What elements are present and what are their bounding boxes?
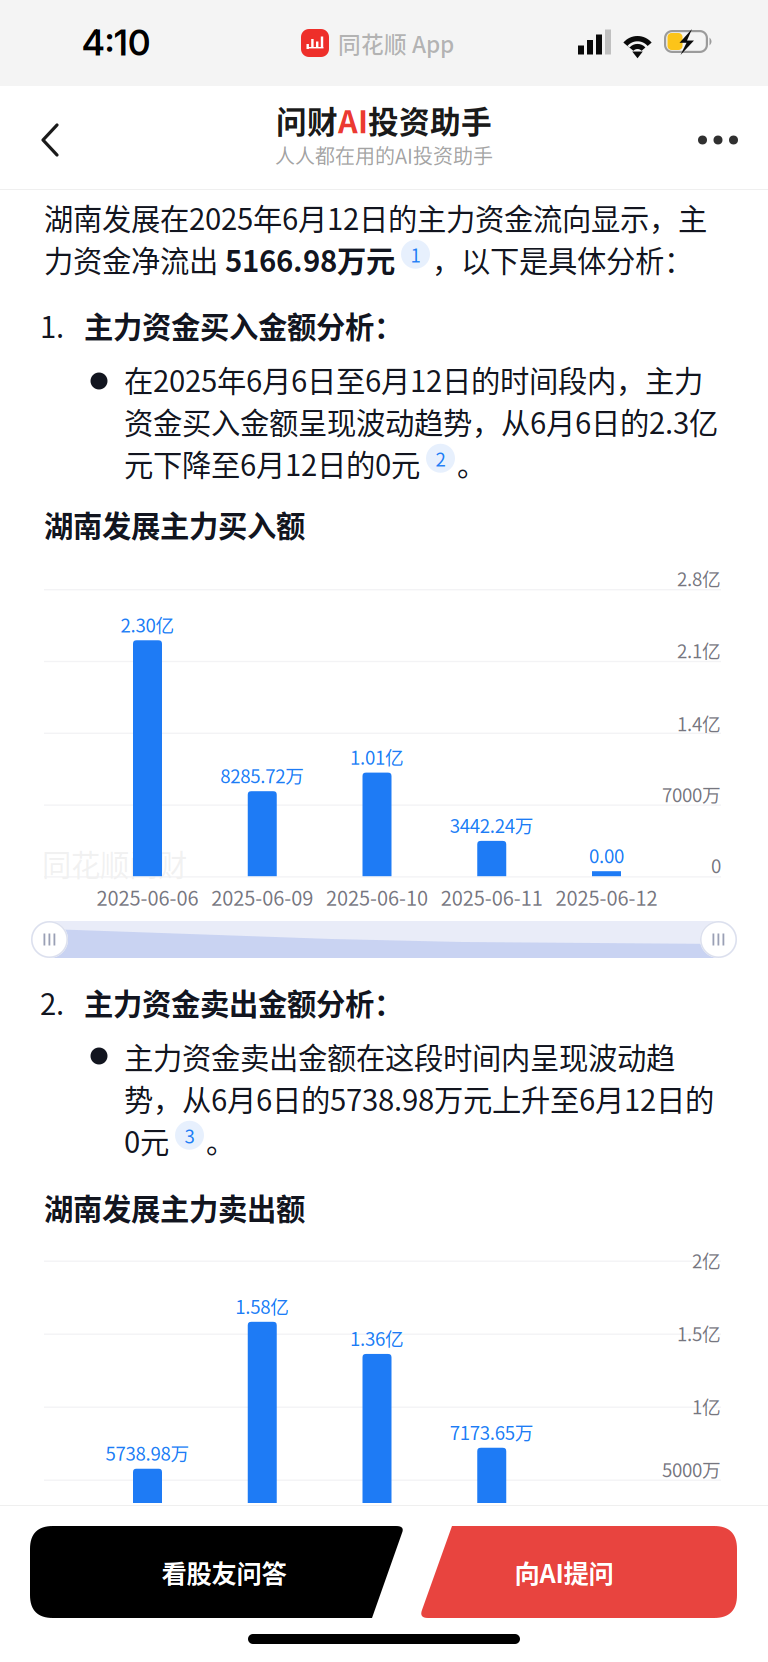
staticText: 资金买入金额呈现波动趋势，从6月6日的2.3亿	[124, 400, 718, 442]
staticText: 1.01亿	[350, 743, 404, 770]
staticText: 0	[711, 851, 721, 878]
staticText: 2.30亿	[120, 611, 174, 638]
staticText: 0.00	[589, 842, 624, 869]
staticText: 向AI提问	[514, 1554, 613, 1590]
staticText: 主力资金买入金额分析：	[84, 304, 403, 346]
staticText: 主力资金卖出金额在这段时间内呈现波动趋	[124, 1035, 675, 1077]
staticText: 主力资金卖出金额分析：	[84, 981, 403, 1023]
staticText: 在2025年6月6日至6月12日的时间段内，主力	[124, 358, 703, 400]
staticText: 5166.98万元	[225, 238, 395, 280]
staticText: 4:10	[82, 22, 150, 64]
staticText: 力资金净流出	[44, 238, 225, 280]
staticText: 7000万	[662, 780, 721, 807]
staticText: 2.	[40, 981, 64, 1023]
staticText: 同花顺问财	[42, 842, 187, 884]
staticText: 元下降至6月12日的0元	[124, 442, 420, 484]
staticText: 人人都在用的AI投资助手	[275, 140, 493, 169]
staticText: 0元	[124, 1119, 169, 1161]
staticText: 。	[206, 1119, 235, 1161]
staticText: 2亿	[692, 1246, 721, 1273]
staticText: 看股友问答	[161, 1554, 286, 1590]
staticText: 7173.65万	[450, 1418, 534, 1445]
staticText: 投资助手	[368, 98, 492, 142]
staticText: 1.	[40, 304, 64, 346]
staticText: 湖南发展主力卖出额	[44, 1186, 305, 1228]
staticText: 3	[184, 1122, 194, 1149]
staticText: 势，从6月6日的5738.98万元上升至6月12日的	[124, 1077, 714, 1119]
staticText: 8285.72万	[220, 762, 304, 789]
staticText: AI	[338, 98, 368, 142]
button[interactable]: Back	[0, 86, 768, 190]
staticText: 2025-06-10	[326, 882, 428, 911]
staticText: 5000万	[662, 1455, 721, 1482]
staticText: 2025-06-06	[96, 882, 198, 911]
staticText: 。	[457, 442, 486, 484]
staticText: 同花顺 App	[338, 27, 454, 59]
staticText: ，以下是具体分析：	[432, 238, 693, 280]
staticText: 湖南发展在2025年6月12日的主力资金流向显示，主	[44, 196, 707, 238]
staticText: 2.1亿	[677, 636, 721, 663]
staticText: 问财	[276, 98, 338, 142]
staticText: 5738.98万	[105, 1439, 189, 1466]
staticText: 2025-06-11	[441, 882, 543, 911]
staticText: 2025-06-09	[211, 882, 313, 911]
button[interactable]: More options	[0, 86, 768, 190]
staticText: 0.00	[589, 1518, 624, 1545]
staticText: 1.4亿	[677, 709, 721, 736]
staticText: 1.5亿	[677, 1319, 721, 1346]
staticText: 1	[410, 241, 420, 268]
staticText: 湖南发展主力买入额	[44, 503, 305, 545]
staticText: 3442.24万	[450, 811, 534, 838]
staticText: 1.58亿	[235, 1292, 289, 1319]
staticText: 1亿	[692, 1392, 721, 1419]
staticText: 1.36亿	[350, 1324, 404, 1351]
staticText: 2025-06-12	[555, 882, 657, 911]
button[interactable]: 看股友问答	[0, 0, 768, 1662]
staticText: 2	[435, 445, 445, 472]
button[interactable]: 向AI提问	[0, 0, 768, 1662]
staticText: 2.8亿	[677, 564, 721, 591]
